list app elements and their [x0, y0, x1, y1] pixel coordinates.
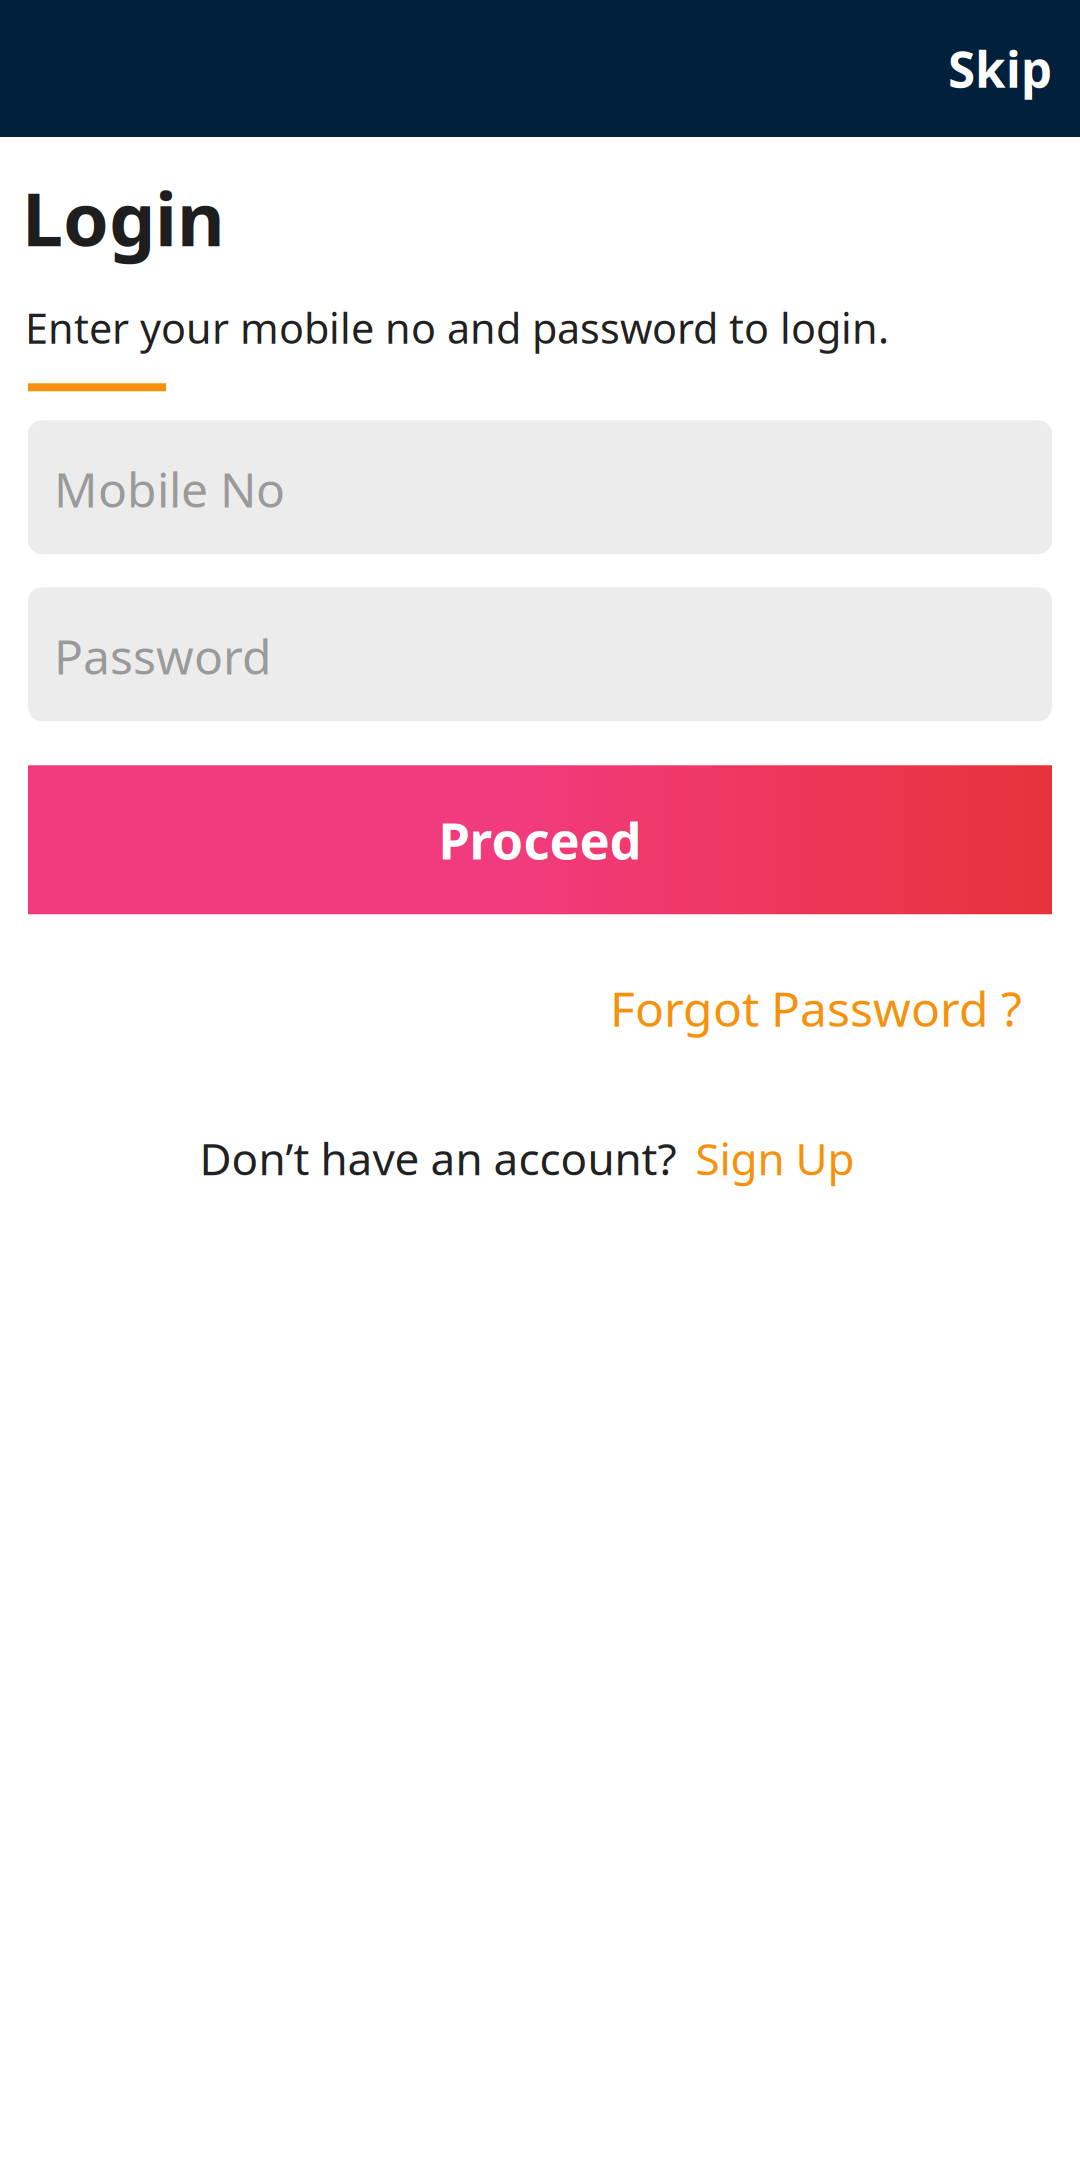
- staticText: Skip: [948, 36, 1052, 101]
- staticText: Password: [54, 624, 272, 688]
- button[interactable]: Password: [28, 587, 1052, 721]
- button[interactable]: Proceed: [28, 765, 1052, 914]
- staticText: Forgot Password ?: [610, 976, 1022, 1040]
- staticText: Don’t have an account?: [199, 1129, 676, 1187]
- button[interactable]: Sign Up: [685, 1115, 864, 1201]
- button[interactable]: Forgot Password ?: [598, 962, 1034, 1054]
- button[interactable]: Mobile No: [28, 420, 1052, 554]
- staticText: Sign Up: [695, 1129, 854, 1187]
- staticText: Proceed: [438, 806, 641, 873]
- staticText: Login: [22, 169, 225, 266]
- staticText: Mobile No: [54, 457, 285, 521]
- button[interactable]: Skip: [938, 24, 1062, 113]
- staticText: Enter your mobile no and password to log…: [25, 300, 889, 355]
